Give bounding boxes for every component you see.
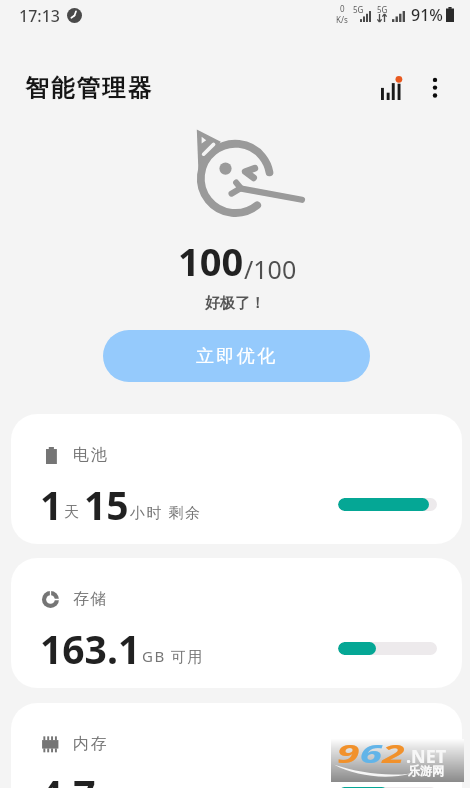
staticText: 智能管理器 <box>25 73 154 103</box>
staticText: 5G <box>353 4 364 15</box>
staticText: 内存 <box>73 734 109 754</box>
staticText: GB 可用 <box>142 646 205 666</box>
staticText: .NET <box>406 744 447 769</box>
staticText: 15 <box>84 478 129 531</box>
staticText: 0 <box>340 3 345 14</box>
staticText: 电池 <box>73 445 109 465</box>
button[interactable]: 立即优化 <box>103 330 370 382</box>
staticText: 163.1 <box>40 622 141 675</box>
staticText: 天 <box>64 503 81 522</box>
button[interactable]: 存储 <box>11 558 462 688</box>
staticText: 乐游网 <box>408 763 444 778</box>
staticText: 存储 <box>73 589 109 609</box>
staticText: 6 <box>360 736 382 770</box>
staticText: 9 <box>337 736 360 770</box>
staticText: K/s <box>336 14 348 25</box>
staticText: 好极了！ <box>0 294 470 313</box>
staticText: 立即优化 <box>196 345 278 368</box>
staticText: 小时 剩余 <box>130 502 202 522</box>
staticText: 4.7 <box>40 767 96 788</box>
staticText: 17:13 <box>19 5 60 27</box>
button[interactable]: 内存 <box>11 703 462 788</box>
button[interactable]: 电池 <box>11 414 462 544</box>
staticText: 2 <box>382 736 405 770</box>
staticText: /100 <box>244 252 297 286</box>
staticText: 91% <box>411 4 443 26</box>
staticText: 5G <box>377 4 388 15</box>
staticText: 100 <box>178 235 244 287</box>
button[interactable]: More options <box>413 65 457 109</box>
button[interactable]: Usage statistics <box>369 65 413 109</box>
staticText: 1 <box>40 478 63 531</box>
